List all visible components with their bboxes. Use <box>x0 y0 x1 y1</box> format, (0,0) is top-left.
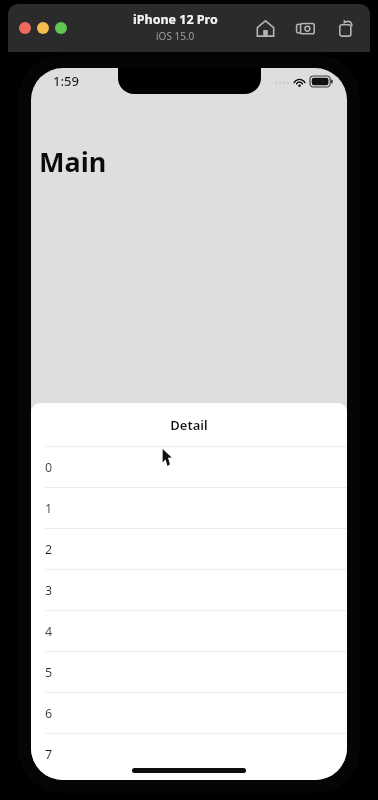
button[interactable]: 2 <box>31 529 347 569</box>
staticText: iPhone 12 Pro <box>133 11 218 28</box>
button[interactable]: Minimise <box>37 22 49 34</box>
button[interactable]: 5 <box>31 652 347 692</box>
button[interactable]: 6 <box>31 693 347 733</box>
button[interactable]: Home <box>252 15 278 41</box>
staticText: 5 <box>45 664 53 681</box>
staticText: 4 <box>45 623 53 640</box>
button[interactable]: 1 <box>31 488 347 528</box>
staticText: 0 <box>45 459 53 476</box>
staticText: 6 <box>45 705 53 722</box>
button[interactable]: 3 <box>31 570 347 610</box>
button[interactable]: 7 <box>31 734 347 774</box>
staticText: 2 <box>45 541 53 558</box>
staticText: Main <box>39 143 107 180</box>
staticText: Detail <box>170 416 208 434</box>
staticText: 1:59 <box>53 72 79 90</box>
button[interactable]: Rotate <box>332 15 358 41</box>
button[interactable]: 4 <box>31 611 347 651</box>
staticText: iOS 15.0 <box>156 29 195 43</box>
button[interactable]: Screenshot <box>292 15 318 41</box>
staticText: 7 <box>45 746 53 763</box>
staticText: 1 <box>45 500 53 517</box>
staticText: 3 <box>45 582 53 599</box>
button[interactable]: Close <box>19 22 31 34</box>
button[interactable]: 0 <box>31 447 347 487</box>
button[interactable]: Maximise <box>55 22 67 34</box>
